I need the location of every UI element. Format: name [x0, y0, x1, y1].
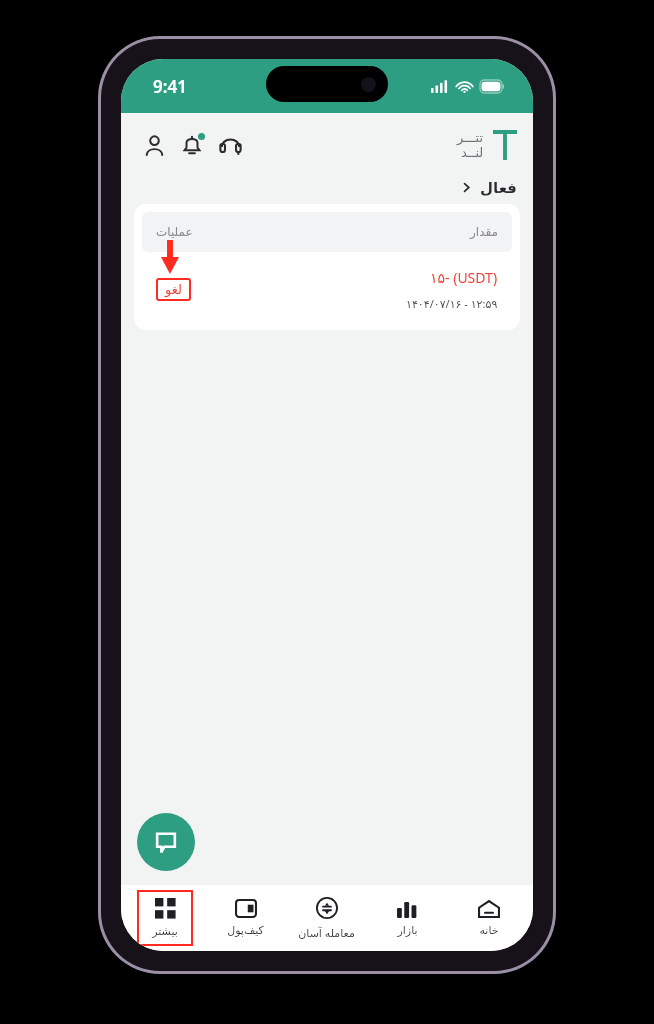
- staticText: خانه: [479, 924, 499, 937]
- button[interactable]: بیشتر: [125, 885, 205, 951]
- staticText: فعال: [480, 179, 517, 196]
- button[interactable]: بازار: [367, 885, 448, 951]
- staticText: ۱۵- (USDT): [430, 268, 498, 287]
- button[interactable]: کیف‌پول: [205, 885, 286, 951]
- button[interactable]: Profile: [135, 126, 173, 164]
- button[interactable]: فعال: [121, 179, 517, 196]
- staticText: ۱۴۰۴/۰۷/۱۶ - ۱۲:۵۹: [406, 296, 498, 311]
- staticText: معامله آسان: [298, 925, 355, 940]
- staticText: لغو: [165, 282, 182, 297]
- staticText: مقدار: [470, 225, 498, 239]
- staticText: بازار: [397, 924, 418, 937]
- staticText: 9:41: [153, 75, 187, 98]
- button[interactable]: Support: [211, 126, 249, 164]
- staticText: بیشتر: [152, 925, 178, 938]
- button[interactable]: Support chat: [137, 813, 195, 871]
- staticText: کیف‌پول: [227, 924, 264, 937]
- staticText: لنــد: [461, 145, 484, 160]
- button[interactable]: لغو: [156, 278, 191, 301]
- staticText: تتـــر: [457, 130, 484, 145]
- button[interactable]: Notifications: [173, 126, 211, 164]
- staticText: عملیات: [156, 225, 193, 239]
- button[interactable]: معامله آسان: [286, 885, 367, 951]
- button[interactable]: خانه: [448, 885, 529, 951]
